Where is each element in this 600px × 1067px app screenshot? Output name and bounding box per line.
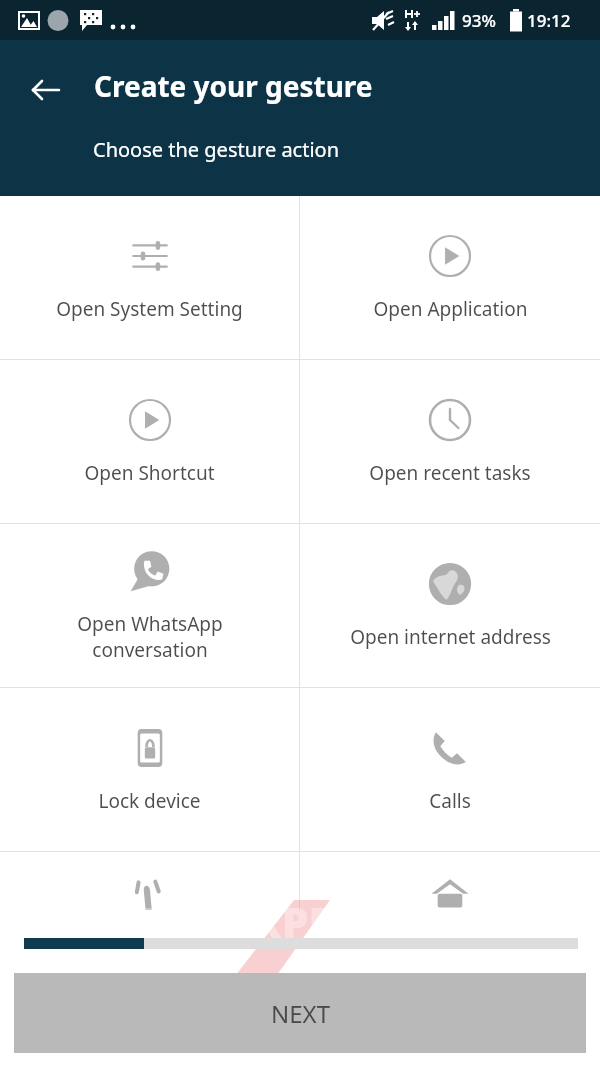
button[interactable]: Open Shortcut [0,360,299,523]
button[interactable]: Open System Setting [0,196,299,359]
staticText: 19:12 [527,9,571,32]
button[interactable]: Lock device [0,688,299,851]
button[interactable]: Back [22,66,70,114]
staticText: Open Application [373,296,528,322]
button[interactable]: Open recent tasks [300,360,600,523]
button[interactable] [0,852,299,912]
button[interactable]: Calls [300,688,600,851]
staticText: Open recent tasks [369,460,531,486]
staticText: Open Shortcut [84,460,215,486]
staticText: Open internet address [350,624,551,650]
button[interactable]: Open WhatsApp conversation [0,524,299,687]
button[interactable]: NEXT [14,973,586,1053]
staticText: Open WhatsApp conversation [77,611,223,663]
staticText: Lock device [98,788,201,814]
button[interactable]: Open internet address [300,524,600,687]
staticText: Open System Setting [56,296,243,322]
staticText: Calls [429,788,471,814]
staticText: Create your gesture [94,67,373,105]
staticText: NEXT [271,997,330,1030]
staticText: BLACKXPERIENCE [113,893,487,950]
button[interactable]: Open Application [300,196,600,359]
staticText: 93% [462,9,496,32]
button[interactable] [300,852,600,912]
staticText: Choose the gesture action [93,136,340,163]
